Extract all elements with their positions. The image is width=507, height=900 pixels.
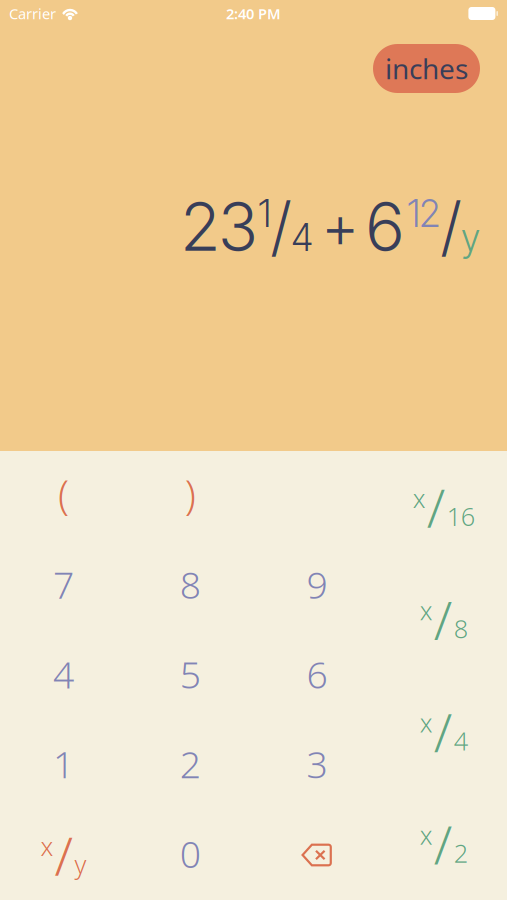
- button[interactable]: Delete: [253, 810, 380, 900]
- button[interactable]: 1: [0, 720, 127, 810]
- staticText: x: [420, 818, 433, 852]
- staticText: x: [420, 594, 433, 627]
- staticText: y: [74, 847, 86, 881]
- staticText: 7: [53, 559, 74, 609]
- staticText: x: [420, 706, 433, 739]
- staticText: x: [413, 481, 426, 515]
- button[interactable]: x: [380, 451, 507, 563]
- button[interactable]: 5: [127, 631, 254, 720]
- staticText: 6: [366, 186, 404, 267]
- staticText: /: [434, 584, 453, 655]
- staticText: 4: [454, 724, 468, 757]
- staticText: 1: [258, 191, 271, 236]
- button[interactable]: 4: [0, 631, 127, 720]
- button[interactable]: 9: [253, 541, 380, 631]
- staticText: 8: [454, 612, 468, 645]
- staticText: Carrier: [9, 4, 56, 23]
- staticText: ): [185, 467, 196, 520]
- staticText: 2:40 PM: [226, 4, 281, 23]
- staticText: 12: [407, 191, 441, 236]
- staticText: 4: [53, 649, 74, 699]
- button[interactable]: x: [380, 675, 507, 788]
- staticText: 4: [291, 215, 313, 260]
- button[interactable]: 0: [127, 810, 254, 900]
- staticText: 3: [306, 739, 327, 789]
- staticText: 8: [180, 559, 201, 609]
- staticText: 0: [180, 829, 201, 878]
- staticText: /: [441, 188, 461, 265]
- button[interactable]: 6: [253, 631, 380, 720]
- button[interactable]: ): [127, 451, 254, 541]
- button[interactable]: x: [380, 788, 507, 900]
- staticText: 6: [306, 649, 327, 699]
- staticText: /: [434, 808, 453, 879]
- staticText: 9: [306, 559, 327, 609]
- staticText: y: [461, 215, 480, 260]
- staticText: 2: [180, 739, 201, 789]
- staticText: x: [40, 829, 53, 863]
- button[interactable]: 8: [127, 541, 254, 631]
- button[interactable]: 7: [0, 541, 127, 631]
- staticText: (: [58, 467, 69, 520]
- button[interactable]: x: [380, 563, 507, 675]
- staticText: +: [322, 191, 358, 262]
- button[interactable]: 2: [127, 720, 254, 810]
- staticText: 5: [180, 649, 201, 699]
- button[interactable]: x: [0, 810, 127, 900]
- button[interactable]: (: [0, 451, 127, 541]
- staticText: /: [434, 696, 453, 767]
- staticText: /: [427, 472, 446, 542]
- button[interactable]: inches: [373, 44, 480, 93]
- staticText: 16: [447, 499, 475, 533]
- staticText: inches: [385, 50, 468, 87]
- staticText: 1: [53, 739, 74, 789]
- staticText: 23: [181, 186, 258, 267]
- staticText: 2: [454, 836, 468, 870]
- staticText: /: [271, 188, 291, 265]
- staticText: /: [54, 820, 73, 890]
- button[interactable]: 3: [253, 720, 380, 810]
